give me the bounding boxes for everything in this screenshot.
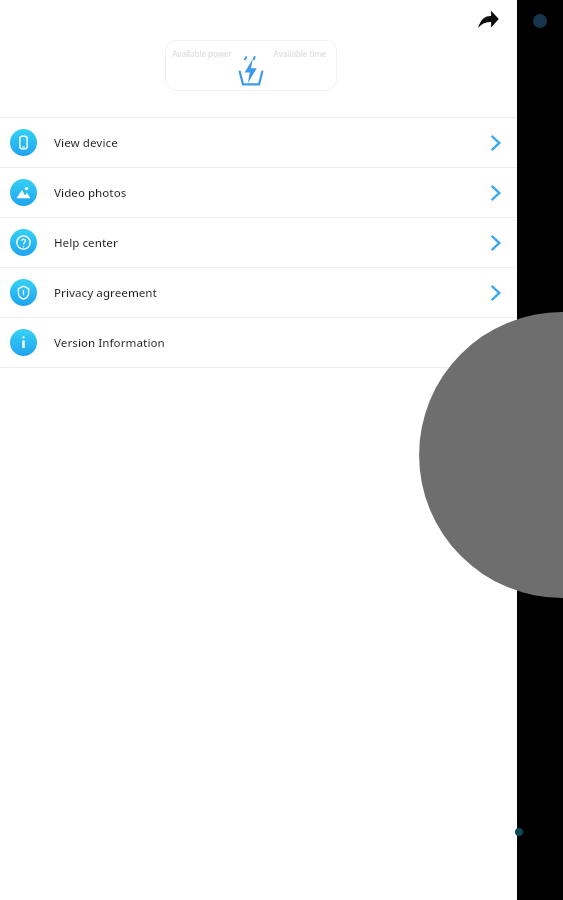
button[interactable]: Privacy agreement (0, 268, 517, 317)
button[interactable]: Available power (165, 40, 337, 91)
button[interactable]: Version Information (0, 318, 517, 367)
button[interactable]: View device (0, 118, 517, 167)
staticText: Available time (267, 48, 333, 59)
staticText: Available power (169, 48, 235, 59)
button[interactable]: Video photos (0, 168, 517, 217)
button[interactable]: Help center (0, 218, 517, 267)
staticText: Video photos (54, 185, 127, 201)
staticText: View device (54, 135, 118, 151)
staticText: Help center (54, 235, 118, 251)
staticText: Privacy agreement (54, 285, 157, 301)
staticText: Version Information (54, 335, 165, 351)
button[interactable]: Share (471, 3, 505, 37)
